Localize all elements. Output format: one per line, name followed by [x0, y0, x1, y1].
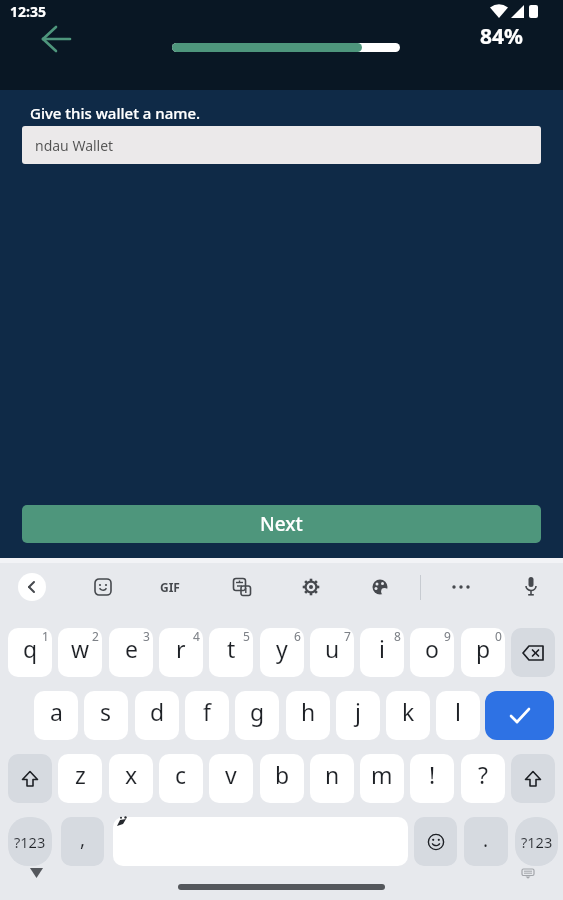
staticText: y — [276, 633, 288, 664]
button[interactable] — [485, 691, 554, 740]
staticText: d — [150, 696, 165, 727]
button[interactable]: t — [209, 628, 253, 677]
staticText: z — [75, 759, 86, 790]
button[interactable]: c — [159, 754, 203, 803]
staticText: h — [301, 696, 316, 727]
button[interactable]: l — [436, 691, 480, 740]
button[interactable]: b — [260, 754, 304, 803]
staticText: f — [203, 696, 211, 727]
staticText: ?123 — [521, 832, 553, 852]
staticText: k — [402, 696, 415, 727]
staticText: ?123 — [14, 832, 46, 852]
button[interactable]: q — [8, 628, 52, 677]
button[interactable]: ?123 — [515, 817, 558, 866]
staticText: 5 — [243, 628, 250, 644]
button[interactable]: d — [135, 691, 179, 740]
button[interactable] — [226, 571, 258, 603]
staticText: . — [483, 827, 489, 853]
button[interactable]: u — [310, 628, 354, 677]
button[interactable] — [18, 573, 46, 601]
staticText: 84% — [480, 22, 523, 51]
staticText: , — [80, 826, 86, 852]
button[interactable]: g — [235, 691, 279, 740]
staticText: s — [100, 696, 112, 727]
staticText: 0 — [495, 628, 502, 644]
button[interactable] — [511, 628, 555, 677]
staticText: w — [71, 633, 90, 664]
button[interactable]: j — [336, 691, 380, 740]
staticText: t — [227, 633, 236, 664]
button[interactable]: w — [58, 628, 102, 677]
staticText: p — [476, 633, 491, 664]
staticText: 7 — [344, 628, 351, 644]
staticText: v — [225, 759, 237, 790]
button[interactable]: ! — [410, 754, 454, 803]
button[interactable] — [113, 817, 408, 866]
button[interactable]: y — [260, 628, 304, 677]
button[interactable]: n — [310, 754, 354, 803]
staticText: 1 — [42, 628, 49, 644]
button[interactable]: i — [360, 628, 404, 677]
staticText: 6 — [294, 628, 301, 644]
button[interactable]: ndau Wallet — [22, 126, 541, 164]
button[interactable]: a — [34, 691, 78, 740]
button[interactable]: o — [410, 628, 454, 677]
button[interactable]: e — [109, 628, 153, 677]
staticText: e — [125, 633, 138, 664]
button[interactable] — [8, 754, 52, 803]
staticText: Next — [260, 511, 303, 537]
staticText: o — [425, 633, 439, 664]
staticText: m — [371, 759, 393, 790]
staticText: GIF — [160, 579, 180, 595]
button[interactable] — [364, 571, 396, 603]
button[interactable]: x — [109, 754, 153, 803]
staticText: 8 — [394, 628, 401, 644]
button[interactable]: v — [209, 754, 253, 803]
staticText: q — [23, 633, 38, 664]
button[interactable]: k — [386, 691, 430, 740]
staticText: r — [176, 633, 186, 664]
button[interactable]: ? — [461, 754, 505, 803]
staticText: Give this wallet a name. — [30, 103, 201, 123]
staticText: ? — [478, 759, 488, 790]
button[interactable]: h — [286, 691, 330, 740]
staticText: 2 — [92, 628, 99, 644]
button[interactable]: m — [360, 754, 404, 803]
button[interactable]: ?123 — [8, 817, 52, 866]
staticText: ndau Wallet — [35, 136, 114, 155]
button[interactable] — [295, 571, 327, 603]
button[interactable] — [414, 817, 457, 866]
button[interactable]: s — [84, 691, 128, 740]
staticText: ! — [429, 759, 436, 790]
button[interactable]: Next — [22, 505, 541, 543]
staticText: x — [125, 759, 138, 790]
staticText: i — [379, 633, 385, 664]
button[interactable] — [87, 571, 119, 603]
staticText: a — [50, 696, 63, 727]
staticText: c — [175, 759, 187, 790]
button[interactable]: p — [461, 628, 505, 677]
button[interactable]: z — [58, 754, 102, 803]
staticText: g — [250, 696, 265, 727]
staticText: n — [325, 759, 340, 790]
staticText: j — [355, 696, 361, 727]
staticText: u — [325, 633, 340, 664]
button[interactable]: f — [185, 691, 229, 740]
staticText: l — [455, 696, 461, 727]
button[interactable] — [445, 571, 477, 603]
staticText: 3 — [143, 628, 150, 644]
button[interactable]: , — [61, 817, 104, 866]
staticText: 12:35 — [10, 2, 46, 21]
button[interactable]: GIF — [152, 573, 188, 601]
button[interactable] — [511, 754, 555, 803]
button[interactable]: . — [464, 817, 508, 866]
button[interactable] — [32, 24, 82, 54]
staticText: b — [275, 759, 290, 790]
staticText: 9 — [444, 628, 451, 644]
button[interactable]: r — [159, 628, 203, 677]
staticText: 4 — [193, 628, 200, 644]
button[interactable] — [515, 571, 547, 603]
